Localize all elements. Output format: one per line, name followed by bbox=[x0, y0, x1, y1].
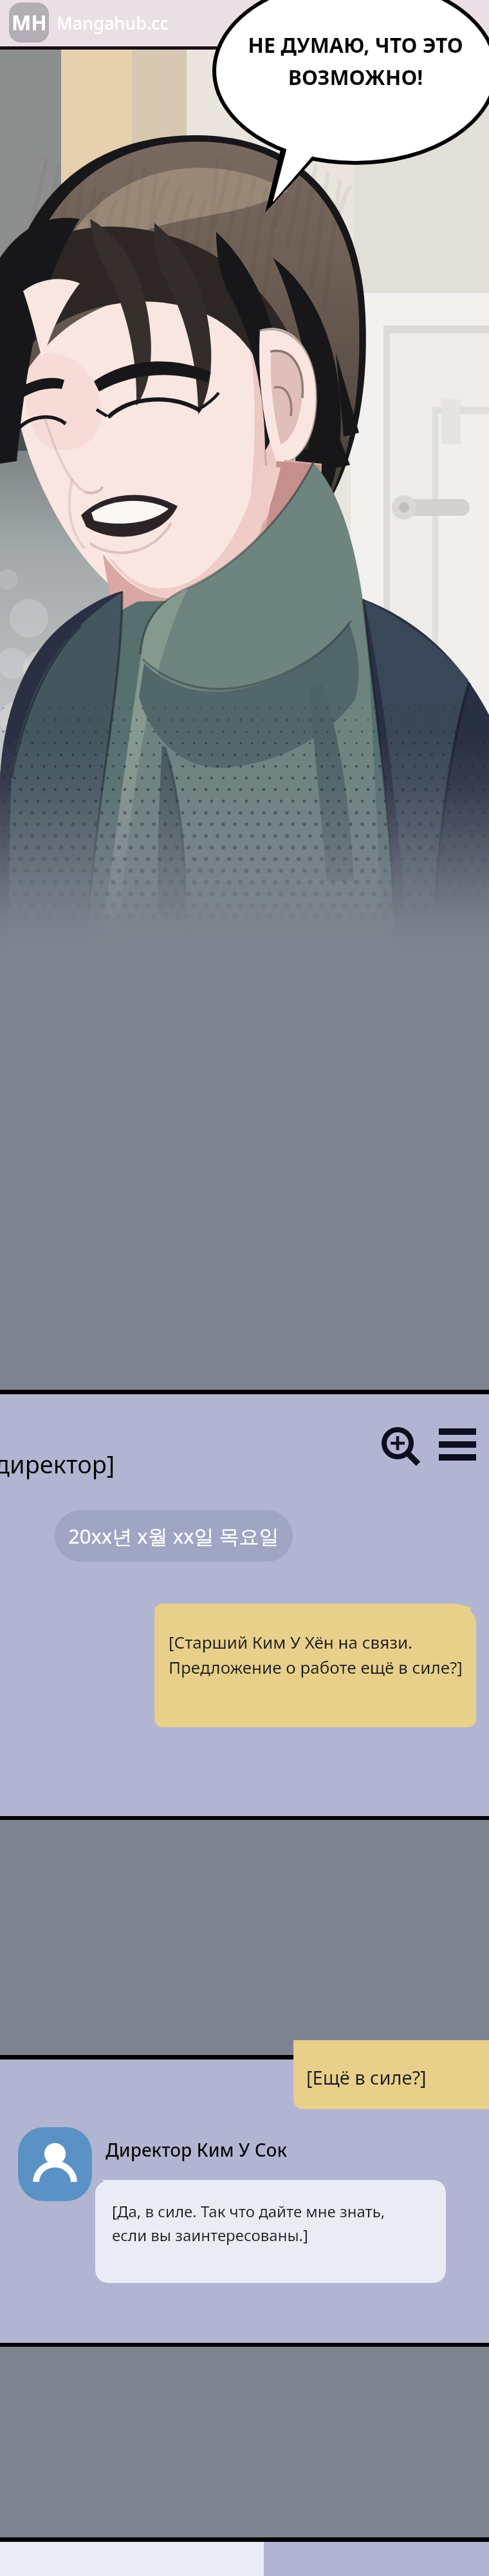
staticText: [Да, в силе. Так что дайте мне знать, ес… bbox=[112, 2201, 385, 2246]
staticText: [Старший Ким У Хён на связи. Предложение… bbox=[169, 1631, 463, 1679]
staticText: НЕ ДУМАЮ, ЧТО ЭТО ВОЗМОЖНО! bbox=[248, 31, 463, 91]
staticText: Mangahub.cc bbox=[57, 11, 169, 35]
staticText: MH bbox=[12, 8, 47, 37]
button[interactable]: Zoom in bbox=[378, 1423, 425, 1469]
staticText: Директор Ким У Сок bbox=[106, 2137, 288, 2162]
staticText: директор] bbox=[0, 1447, 115, 1481]
staticText: 20xx년 x월 xx일 목요일 bbox=[68, 1522, 279, 1549]
button[interactable]: Contact avatar bbox=[18, 2127, 92, 2201]
staticText: [Ещё в силе?] bbox=[306, 2065, 427, 2090]
button[interactable]: Menu bbox=[436, 1423, 481, 1468]
